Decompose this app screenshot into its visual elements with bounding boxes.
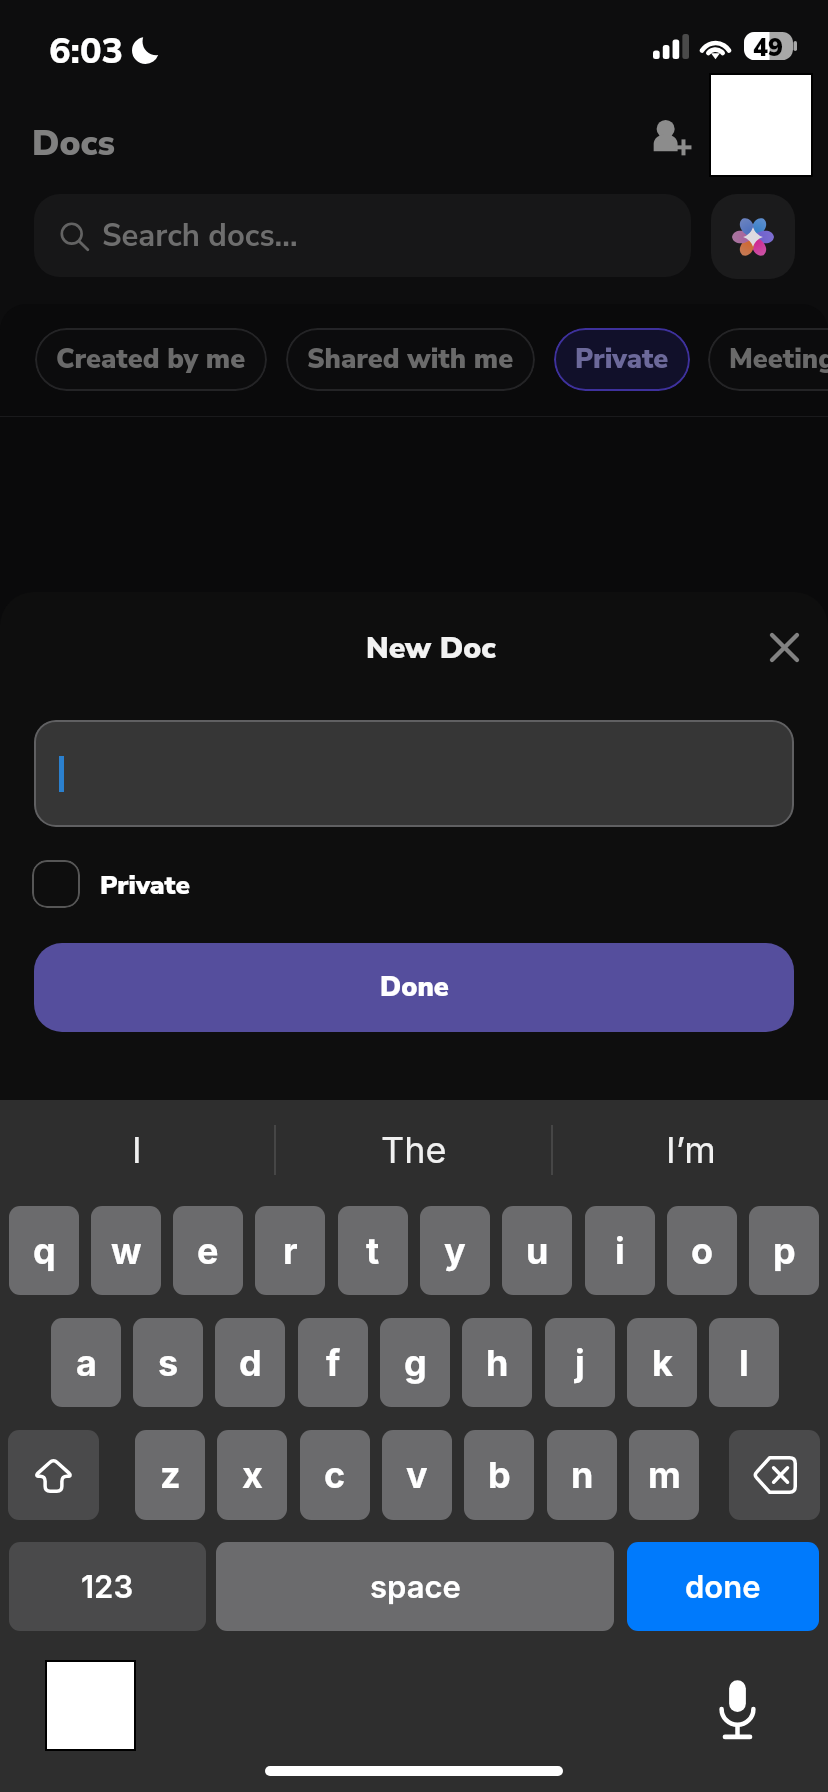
staticText: done <box>685 1568 761 1606</box>
button[interactable]: I <box>0 1100 274 1200</box>
button[interactable]: e <box>173 1206 243 1295</box>
button[interactable]: v <box>382 1430 452 1520</box>
button[interactable]: Shift <box>8 1430 99 1520</box>
staticText: f <box>326 1341 341 1385</box>
button[interactable]: Backspace <box>729 1430 820 1520</box>
staticText: o <box>691 1229 714 1273</box>
button[interactable]: l <box>709 1318 779 1407</box>
staticText: 49 <box>753 31 784 59</box>
staticText: c <box>324 1453 346 1497</box>
button[interactable]: k <box>627 1318 697 1407</box>
button[interactable]: a <box>51 1318 121 1407</box>
staticText: e <box>197 1229 219 1273</box>
staticText: Search docs… <box>102 215 298 257</box>
staticText: I’m <box>666 1128 716 1172</box>
staticText: r <box>283 1229 298 1273</box>
button[interactable]: w <box>91 1206 161 1295</box>
button[interactable]: d <box>215 1318 285 1407</box>
button[interactable]: The <box>276 1100 551 1200</box>
staticText: 123 <box>81 1568 134 1606</box>
button[interactable]: Dictate <box>700 1672 774 1746</box>
button[interactable]: h <box>462 1318 532 1407</box>
button[interactable]: space <box>216 1542 614 1631</box>
staticText: q <box>33 1229 56 1273</box>
button[interactable]: u <box>502 1206 572 1295</box>
button[interactable]: i <box>585 1206 655 1295</box>
button[interactable]: Close <box>756 619 812 675</box>
button[interactable]: o <box>667 1206 737 1295</box>
staticText: w <box>111 1229 142 1273</box>
button[interactable]: Meetings <box>708 328 828 391</box>
staticText: p <box>773 1229 796 1273</box>
button[interactable]: I’m <box>553 1100 828 1200</box>
button[interactable]: m <box>629 1430 699 1520</box>
staticText: x <box>242 1453 263 1497</box>
button[interactable]: j <box>545 1318 615 1407</box>
button[interactable]: s <box>133 1318 203 1407</box>
staticText: Docs <box>32 120 115 168</box>
button[interactable]: r <box>255 1206 325 1295</box>
staticText: k <box>652 1341 673 1385</box>
staticText: I <box>132 1128 142 1172</box>
button[interactable]: n <box>547 1430 617 1520</box>
staticText: Private <box>575 341 669 378</box>
staticText: space <box>370 1568 461 1606</box>
staticText: Meetings <box>729 341 828 378</box>
staticText: u <box>526 1229 549 1273</box>
button[interactable]: Search docs… <box>34 194 691 277</box>
button[interactable]: 123 <box>9 1542 206 1631</box>
staticText: t <box>366 1229 380 1273</box>
staticText: i <box>615 1229 625 1273</box>
staticText: Created by me <box>56 341 246 378</box>
staticText: n <box>571 1453 594 1497</box>
staticText: 6:03 <box>49 27 124 76</box>
staticText: m <box>648 1453 681 1497</box>
button[interactable]: g <box>380 1318 450 1407</box>
button[interactable]: f <box>298 1318 368 1407</box>
button[interactable] <box>34 720 794 827</box>
button[interactable]: Private <box>554 328 690 391</box>
button[interactable]: AI assistant <box>711 194 795 279</box>
staticText: z <box>160 1453 181 1497</box>
button[interactable] <box>32 860 80 908</box>
button[interactable]: Shared with me <box>286 328 535 391</box>
button[interactable]: done <box>627 1542 819 1631</box>
staticText: b <box>488 1453 511 1497</box>
button[interactable]: q <box>9 1206 79 1295</box>
button[interactable]: b <box>464 1430 534 1520</box>
button[interactable]: Created by me <box>35 328 267 391</box>
staticText: j <box>575 1341 585 1385</box>
staticText: New Doc <box>366 628 496 669</box>
staticText: h <box>486 1341 509 1385</box>
button[interactable]: z <box>135 1430 205 1520</box>
button[interactable]: c <box>300 1430 370 1520</box>
staticText: g <box>404 1341 427 1385</box>
staticText: v <box>406 1453 428 1497</box>
staticText: y <box>444 1229 466 1273</box>
staticText: l <box>739 1341 749 1385</box>
staticText: s <box>158 1341 179 1385</box>
button[interactable]: Add person <box>634 101 704 171</box>
staticText: Private <box>100 868 190 903</box>
button[interactable]: t <box>338 1206 408 1295</box>
button[interactable]: p <box>749 1206 819 1295</box>
staticText: Shared with me <box>307 341 514 378</box>
button[interactable]: Done <box>34 943 794 1032</box>
staticText: The <box>381 1128 447 1172</box>
button[interactable]: x <box>217 1430 287 1520</box>
staticText: d <box>239 1341 262 1385</box>
staticText: a <box>76 1341 97 1385</box>
staticText: Done <box>380 969 449 1006</box>
button[interactable]: y <box>420 1206 490 1295</box>
